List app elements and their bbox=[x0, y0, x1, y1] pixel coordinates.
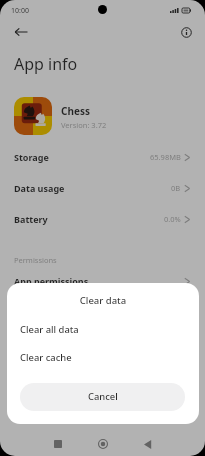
button[interactable]: Recent apps bbox=[35, 432, 80, 456]
button[interactable]: Battery bbox=[0, 203, 205, 234]
button[interactable]: Clear cache bbox=[7, 343, 199, 371]
button[interactable]: Data usage bbox=[0, 172, 205, 203]
staticText: 0.0% bbox=[164, 214, 181, 224]
button[interactable]: Back bbox=[125, 432, 170, 456]
staticText: Storage bbox=[14, 151, 49, 163]
staticText: App info bbox=[14, 53, 78, 75]
staticText: Permissions bbox=[14, 255, 57, 265]
staticText: Clear data bbox=[7, 294, 199, 307]
button[interactable]: App details bbox=[175, 21, 197, 43]
staticText: Cancel bbox=[88, 390, 118, 403]
staticText: Battery bbox=[14, 213, 48, 225]
staticText: Clear cache bbox=[20, 351, 72, 364]
button[interactable]: Storage bbox=[0, 141, 205, 172]
button[interactable]: Home bbox=[80, 432, 125, 456]
staticText: Data usage bbox=[14, 182, 65, 194]
button[interactable]: App permissions bbox=[0, 265, 205, 296]
button[interactable]: Clear all data bbox=[7, 315, 199, 343]
staticText: 10:00 bbox=[11, 6, 29, 16]
staticText: Clear all data bbox=[20, 323, 79, 336]
button[interactable]: Cancel bbox=[20, 383, 185, 411]
button[interactable]: Back bbox=[10, 21, 32, 43]
staticText: Version: 3.72 bbox=[61, 120, 107, 130]
staticText: 0B bbox=[171, 183, 181, 193]
staticText: Chess bbox=[61, 104, 90, 118]
staticText: App permissions bbox=[14, 275, 89, 287]
staticText: 65.98MB bbox=[150, 152, 181, 162]
